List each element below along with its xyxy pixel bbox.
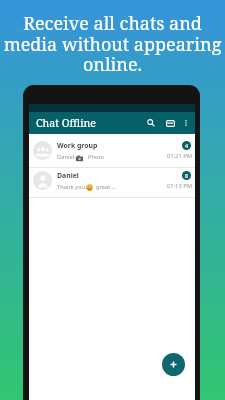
staticText: Photo	[88, 153, 105, 160]
staticText: Work group	[57, 141, 98, 150]
staticText: Thank you	[57, 183, 86, 190]
staticText: Daniel	[57, 171, 79, 180]
button[interactable]: More options	[179, 116, 193, 130]
staticText: great ...	[96, 183, 117, 190]
staticText: 01:21 PM	[167, 152, 192, 160]
staticText: 01:13 PM	[167, 182, 192, 190]
button[interactable]: Search	[143, 115, 159, 131]
button[interactable]: Work group	[29, 134, 195, 167]
staticText: Daniel:	[57, 153, 76, 160]
button[interactable]: Daniel	[29, 168, 195, 197]
button[interactable]: Archived chats	[162, 115, 178, 131]
button[interactable]: New chat	[162, 353, 185, 376]
staticText: Receive all chats and media without appe…	[0, 11, 225, 76]
staticText: 8	[185, 172, 188, 179]
staticText: 4	[185, 142, 188, 149]
staticText: Chat Offline	[36, 116, 97, 130]
